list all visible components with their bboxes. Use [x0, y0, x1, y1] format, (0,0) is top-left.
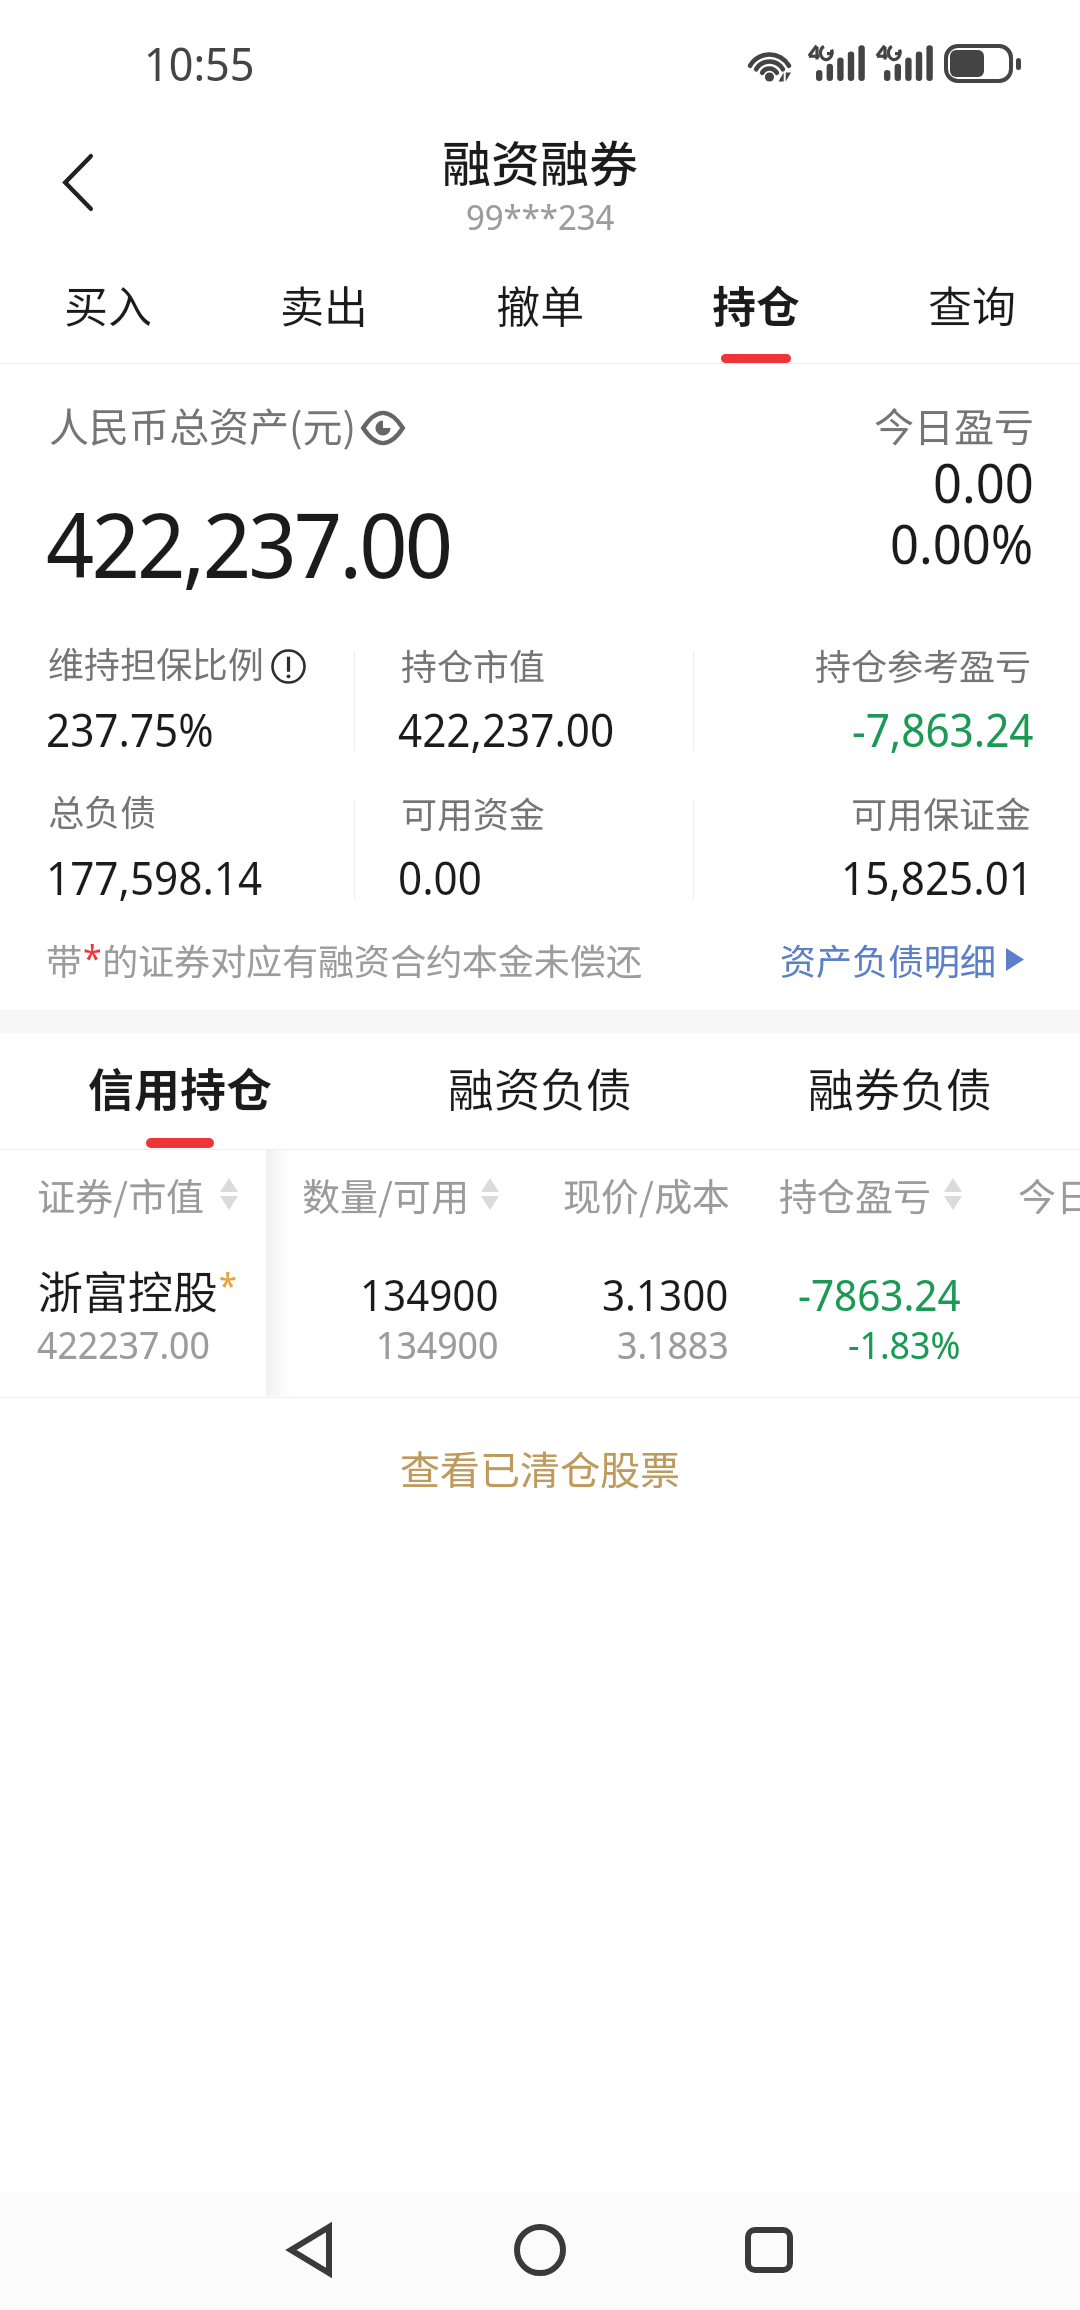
staticText: 可用保证金: [851, 786, 1032, 838]
button[interactable]: 证券/市值: [37, 1167, 238, 1222]
staticText: 带: [46, 933, 83, 985]
button[interactable]: 融券负债: [720, 1033, 1080, 1149]
staticText: 撤单: [496, 272, 584, 336]
staticText: -7863.24: [798, 1265, 961, 1324]
button[interactable]: 查看已清仓股票: [360, 1421, 720, 1515]
staticText: 持仓盈亏: [779, 1167, 932, 1222]
staticText: 查看已清仓股票: [400, 1439, 680, 1497]
button[interactable]: 卖出: [216, 258, 432, 364]
staticText: 浙富控股: [38, 1257, 219, 1322]
staticText: 422237.00: [37, 1318, 210, 1370]
staticText: 0.00: [933, 445, 1034, 519]
staticText: 融资负债: [448, 1054, 632, 1121]
staticText: 的证券对应有融资合约本金未偿还: [102, 933, 643, 985]
staticText: 维持担保比例: [48, 636, 265, 688]
staticText: 持仓参考盈亏: [815, 638, 1032, 690]
button[interactable]: 查询: [864, 258, 1080, 364]
button[interactable]: 持仓: [648, 258, 864, 364]
staticText: 可用资金: [401, 786, 546, 838]
button[interactable]: Recents: [709, 2192, 829, 2308]
button[interactable]: Toggle balance visibility: [361, 411, 405, 445]
button[interactable]: 现价/成本: [563, 1167, 730, 1222]
staticText: 0.00: [398, 847, 482, 908]
staticText: 证券/市值: [37, 1167, 204, 1222]
staticText: 数量/可用: [302, 1167, 469, 1222]
button[interactable]: 买入: [0, 258, 216, 364]
button[interactable]: 数量/可用: [302, 1167, 499, 1222]
staticText: 人民币总资产(元): [49, 396, 357, 454]
button[interactable]: Home: [480, 2192, 600, 2308]
staticText: *: [83, 933, 102, 982]
staticText: 15,825.01: [841, 847, 1034, 908]
button[interactable]: 撤单: [432, 258, 648, 364]
staticText: 99***234: [466, 193, 615, 241]
staticText: 资产负债明细: [780, 933, 997, 985]
staticText: 信用持仓: [88, 1054, 272, 1121]
staticText: 177,598.14: [46, 847, 263, 908]
staticText: 融资融券: [442, 125, 639, 196]
staticText: 0.00%: [890, 506, 1034, 580]
staticText: -7,863.24: [852, 699, 1034, 760]
staticText: 134900: [360, 1265, 499, 1324]
staticText: 持仓: [712, 272, 800, 336]
staticText: 237.75%: [46, 699, 214, 760]
staticText: 总负债: [48, 784, 157, 836]
staticText: 买入: [64, 272, 152, 336]
staticText: 422,237.00: [398, 699, 615, 760]
staticText: 持仓市值: [401, 638, 546, 690]
button[interactable]: 资产负债明细: [780, 925, 1024, 993]
button[interactable]: Back: [250, 2192, 370, 2308]
staticText: 今日: [1018, 1167, 1080, 1222]
button[interactable]: 浙富控股: [0, 1247, 1080, 1397]
button[interactable]: Back: [28, 132, 128, 232]
staticText: 查询: [928, 272, 1016, 336]
staticText: 现价/成本: [563, 1167, 730, 1222]
staticText: 卖出: [280, 272, 368, 336]
button[interactable]: 融资负债: [360, 1033, 720, 1149]
staticText: 134900: [376, 1318, 499, 1370]
staticText: *: [219, 1262, 237, 1308]
staticText: -1.83%: [848, 1318, 961, 1370]
staticText: 今日盈亏: [874, 396, 1034, 454]
staticText: 422,237.00: [46, 482, 451, 605]
staticText: 10:55: [144, 32, 255, 95]
staticText: 3.1883: [617, 1318, 729, 1370]
button[interactable]: 持仓盈亏: [779, 1167, 962, 1222]
staticText: 融券负债: [808, 1054, 992, 1121]
button[interactable]: 信用持仓: [0, 1033, 360, 1149]
staticText: 3.1300: [602, 1265, 729, 1324]
